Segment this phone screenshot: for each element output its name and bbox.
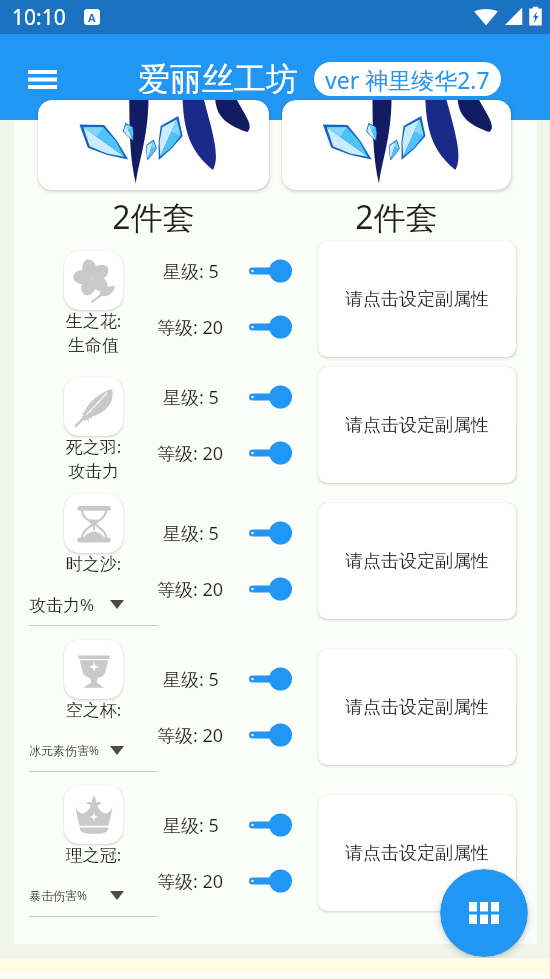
staticText: 星级: 5 <box>163 667 219 692</box>
staticText: 空之杯: <box>24 698 163 721</box>
button[interactable]: 空之杯: <box>64 640 123 699</box>
staticText: 冰元素伤害% <box>29 742 99 758</box>
button[interactable]: 理之冠: <box>64 785 123 844</box>
button[interactable] <box>242 663 298 695</box>
staticText: 请点击设定副属性 <box>345 288 489 311</box>
button[interactable]: 攻击力% <box>29 590 158 618</box>
staticText: 生之花: 生命值 <box>24 309 163 356</box>
staticText: 死之羽: 攻击力 <box>24 435 163 482</box>
button[interactable]: 请点击设定副属性 <box>318 367 516 483</box>
staticText: 请点击设定副属性 <box>345 696 489 719</box>
button[interactable]: Artifact set <box>38 100 269 190</box>
staticText: 等级: 20 <box>157 315 224 340</box>
button[interactable] <box>242 809 298 841</box>
button[interactable]: 请点击设定副属性 <box>318 241 516 357</box>
button[interactable]: 时之沙: <box>64 494 123 553</box>
staticText: 等级: 20 <box>157 869 224 894</box>
button[interactable]: 请点击设定副属性 <box>318 795 516 911</box>
button[interactable]: ver 神里绫华2.7 <box>314 62 501 96</box>
button[interactable]: Grid view <box>440 869 528 957</box>
staticText: A <box>88 10 96 25</box>
staticText: 等级: 20 <box>157 723 224 748</box>
button[interactable]: 请点击设定副属性 <box>318 503 516 619</box>
button[interactable] <box>242 865 298 897</box>
button[interactable] <box>242 719 298 751</box>
staticText: 请点击设定副属性 <box>345 414 489 437</box>
button[interactable]: 生之花: 生命值 <box>64 251 123 310</box>
staticText: 等级: 20 <box>157 441 224 466</box>
button[interactable] <box>242 381 298 413</box>
staticText: 星级: 5 <box>163 521 219 546</box>
staticText: 10:10 <box>12 3 66 32</box>
staticText: 攻击力% <box>29 593 95 616</box>
button[interactable]: 请点击设定副属性 <box>318 649 516 765</box>
button[interactable] <box>242 517 298 549</box>
staticText: 2件套 <box>38 195 269 239</box>
staticText: 星级: 5 <box>163 385 219 410</box>
button[interactable]: 死之羽: 攻击力 <box>64 377 123 436</box>
button[interactable]: 暴击伤害% <box>29 881 158 909</box>
staticText: 暴击伤害% <box>29 887 87 903</box>
staticText: 等级: 20 <box>157 577 224 602</box>
button[interactable] <box>242 573 298 605</box>
button[interactable]: Menu <box>16 53 68 105</box>
staticText: 爱丽丝工坊 <box>138 59 298 99</box>
button[interactable] <box>242 255 298 287</box>
staticText: 请点击设定副属性 <box>345 842 489 865</box>
staticText: 理之冠: <box>24 843 163 866</box>
staticText: ver 神里绫华2.7 <box>325 64 490 95</box>
staticText: 2件套 <box>282 195 511 239</box>
button[interactable]: Artifact set <box>282 100 511 190</box>
staticText: 请点击设定副属性 <box>345 550 489 573</box>
button[interactable] <box>242 311 298 343</box>
button[interactable] <box>242 437 298 469</box>
staticText: 星级: 5 <box>163 813 219 838</box>
button[interactable]: 冰元素伤害% <box>29 736 158 764</box>
staticText: 时之沙: <box>24 552 163 575</box>
staticText: 星级: 5 <box>163 259 219 284</box>
